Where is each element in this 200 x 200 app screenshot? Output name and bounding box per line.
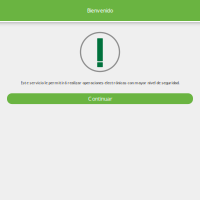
staticText: Este servicio le permitirá realizar oper…: [20, 80, 179, 85]
staticText: Continuar: [88, 95, 112, 102]
button[interactable]: Continuar: [7, 93, 193, 104]
staticText: Bienvenido: [87, 7, 113, 14]
